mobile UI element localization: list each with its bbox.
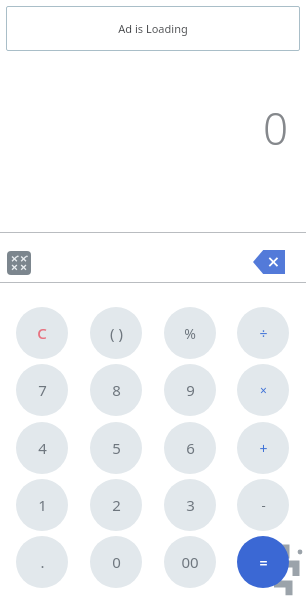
staticText: -: [261, 496, 266, 514]
button[interactable]: =: [237, 536, 289, 588]
button[interactable]: Backspace: [253, 250, 287, 274]
staticText: 7: [38, 380, 47, 400]
staticText: %: [184, 324, 196, 343]
button[interactable]: C: [16, 307, 68, 359]
staticText: 4: [38, 438, 47, 458]
button[interactable]: 4: [16, 422, 68, 474]
button[interactable]: ÷: [237, 307, 289, 359]
staticText: Ad is Loading: [118, 21, 188, 36]
button[interactable]: 8: [90, 364, 142, 416]
staticText: 0: [112, 552, 121, 572]
staticText: 8: [112, 380, 121, 400]
button[interactable]: +: [237, 422, 289, 474]
staticText: .: [40, 552, 45, 572]
button[interactable]: ×: [237, 364, 289, 416]
button[interactable]: 1: [16, 479, 68, 531]
staticText: 3: [186, 495, 195, 515]
button[interactable]: .: [16, 536, 68, 588]
button[interactable]: 5: [90, 422, 142, 474]
button[interactable]: Ad is Loading: [6, 6, 300, 51]
button[interactable]: 9: [164, 364, 216, 416]
staticText: 0: [262, 98, 288, 150]
staticText: C: [37, 323, 47, 343]
button[interactable]: %: [164, 307, 216, 359]
button[interactable]: 7: [16, 364, 68, 416]
staticText: 5: [112, 438, 121, 458]
staticText: ÷: [259, 324, 268, 343]
button[interactable]: 6: [164, 422, 216, 474]
staticText: 2: [112, 495, 121, 515]
button[interactable]: -: [237, 479, 289, 531]
button[interactable]: 2: [90, 479, 142, 531]
button[interactable]: 3: [164, 479, 216, 531]
staticText: =: [259, 553, 268, 572]
button[interactable]: Scientific functions: [7, 251, 31, 275]
staticText: 6: [186, 438, 195, 458]
button[interactable]: ( ): [90, 307, 142, 359]
button[interactable]: 00: [164, 536, 216, 588]
staticText: 00: [181, 552, 199, 572]
staticText: ( ): [110, 323, 123, 343]
staticText: +: [259, 439, 268, 458]
staticText: 1: [38, 495, 47, 515]
staticText: ×: [260, 382, 267, 398]
button[interactable]: 0: [90, 536, 142, 588]
staticText: 9: [186, 380, 195, 400]
